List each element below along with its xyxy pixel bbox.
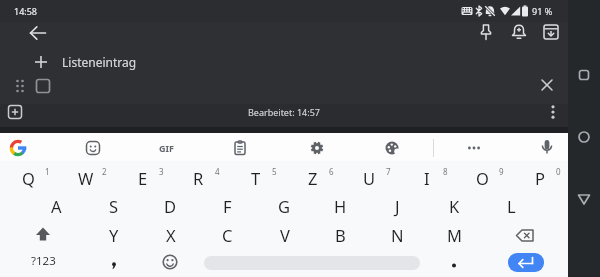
staticText: D <box>164 195 177 217</box>
staticText: C <box>222 224 233 246</box>
button[interactable] <box>84 139 102 157</box>
button[interactable] <box>538 76 556 94</box>
staticText: P <box>535 167 545 189</box>
staticText: A <box>51 195 62 217</box>
button[interactable] <box>6 136 30 160</box>
button[interactable] <box>94 248 134 276</box>
staticText: H <box>334 195 347 217</box>
staticText: J <box>395 195 400 217</box>
staticText: 2 <box>102 166 107 177</box>
staticText: 5 <box>272 166 277 177</box>
button[interactable]: R <box>170 163 227 192</box>
staticText: F <box>223 195 232 217</box>
button[interactable] <box>6 103 24 121</box>
button[interactable]: T <box>227 163 284 192</box>
staticText: 3 <box>159 166 164 177</box>
staticText: Listeneintrag <box>62 54 137 70</box>
staticText: GIF <box>159 142 174 154</box>
staticText: W <box>78 167 94 189</box>
button[interactable]: L <box>483 191 540 220</box>
staticText: U <box>363 167 376 189</box>
button[interactable] <box>28 48 188 76</box>
button[interactable]: N <box>369 220 426 249</box>
staticText: L <box>507 195 516 217</box>
staticText: S <box>109 195 119 217</box>
button[interactable] <box>485 221 565 250</box>
staticText: Z <box>308 167 318 189</box>
button[interactable] <box>150 248 190 276</box>
staticText: 0 <box>556 166 561 177</box>
staticText: N <box>391 224 404 246</box>
button[interactable]: F <box>199 191 256 220</box>
staticText: Y <box>109 224 119 246</box>
staticText: X <box>166 224 176 246</box>
button[interactable]: C <box>199 220 256 249</box>
staticText: K <box>449 195 460 217</box>
button[interactable] <box>572 125 596 149</box>
staticText: 6 <box>329 166 334 177</box>
button[interactable] <box>231 139 249 157</box>
button[interactable] <box>572 63 596 87</box>
button[interactable]: D <box>142 191 199 220</box>
staticText: M <box>447 224 462 246</box>
staticText: E <box>138 167 148 189</box>
button[interactable]: O <box>454 163 511 192</box>
button[interactable]: G <box>256 191 313 220</box>
staticText: O <box>476 167 489 189</box>
button[interactable] <box>541 22 561 42</box>
button[interactable] <box>3 220 83 249</box>
button[interactable]: S <box>85 191 142 220</box>
button[interactable] <box>308 139 326 157</box>
staticText: T <box>251 167 261 189</box>
button[interactable]: I <box>398 163 455 192</box>
button[interactable]: V <box>256 220 313 249</box>
button[interactable]: A <box>28 191 85 220</box>
staticText: B <box>335 224 346 246</box>
button[interactable] <box>383 139 401 157</box>
button[interactable]: Q <box>0 163 57 192</box>
button[interactable]: K <box>426 191 483 220</box>
button[interactable]: M <box>426 220 483 249</box>
button[interactable] <box>508 253 544 272</box>
button[interactable]: GIF <box>146 136 186 160</box>
button[interactable]: H <box>312 191 369 220</box>
button[interactable]: X <box>142 220 199 249</box>
button[interactable]: B <box>312 220 369 249</box>
staticText: ?123 <box>31 253 56 269</box>
staticText: 1 <box>45 166 50 177</box>
staticText: R <box>193 167 204 189</box>
staticText: 4 <box>215 166 220 177</box>
button[interactable]: Y <box>85 220 142 249</box>
button[interactable]: Z <box>284 163 341 192</box>
button[interactable]: ?123 <box>3 247 83 275</box>
staticText: V <box>280 224 290 246</box>
staticText: 8 <box>443 166 448 177</box>
button[interactable] <box>26 21 50 45</box>
staticText: 9 <box>499 166 504 177</box>
staticText: G <box>278 195 291 217</box>
staticText: Bearbeitet: 14:57 <box>248 106 320 118</box>
button[interactable] <box>572 187 596 211</box>
button[interactable] <box>509 22 529 42</box>
button[interactable] <box>434 248 474 276</box>
staticText: Q <box>22 167 35 189</box>
button[interactable]: J <box>369 191 426 220</box>
button[interactable]: P <box>511 163 568 192</box>
button[interactable]: U <box>341 163 398 192</box>
staticText: I <box>424 167 430 189</box>
button[interactable]: W <box>57 163 114 192</box>
button[interactable]: E <box>114 163 171 192</box>
staticText: 91 % <box>532 5 553 17</box>
button[interactable] <box>538 137 556 157</box>
button[interactable] <box>465 139 483 157</box>
button[interactable] <box>545 103 561 121</box>
staticText: 14:58 <box>14 5 38 17</box>
button[interactable] <box>476 22 496 42</box>
button[interactable] <box>33 76 53 96</box>
staticText: 7 <box>386 166 391 177</box>
